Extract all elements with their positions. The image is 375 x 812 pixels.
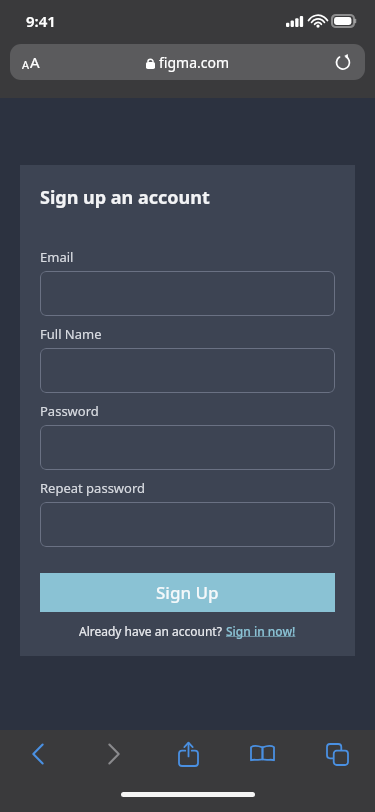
button[interactable]: Tabs [313, 732, 361, 776]
button[interactable]: Sign Up [40, 573, 335, 612]
button[interactable] [40, 348, 335, 393]
staticText: A [30, 52, 40, 72]
staticText: Email [40, 248, 74, 266]
staticText: figma.com [159, 53, 230, 72]
button[interactable]: Reload [332, 51, 354, 73]
staticText: Password [40, 402, 99, 420]
staticText: Sign in now! [226, 623, 296, 639]
staticText: Repeat password [40, 479, 146, 497]
button[interactable] [40, 425, 335, 470]
staticText: A [22, 57, 30, 72]
staticText: Full Name [40, 325, 102, 343]
button[interactable]: Text size [22, 52, 40, 72]
button[interactable] [40, 502, 335, 547]
button[interactable]: Bookmarks [238, 732, 286, 776]
staticText: 9:41 [26, 11, 56, 31]
staticText: Sign up an account [40, 185, 210, 210]
button[interactable]: Share [164, 732, 212, 776]
button[interactable]: Sign in now! [226, 623, 296, 639]
button[interactable]: Back [14, 732, 62, 776]
button[interactable]: Forward [89, 732, 137, 776]
staticText: Sign Up [156, 581, 219, 604]
staticText: Already have an account? [79, 623, 226, 639]
button[interactable] [40, 271, 335, 316]
button[interactable]: Text size [10, 44, 365, 80]
